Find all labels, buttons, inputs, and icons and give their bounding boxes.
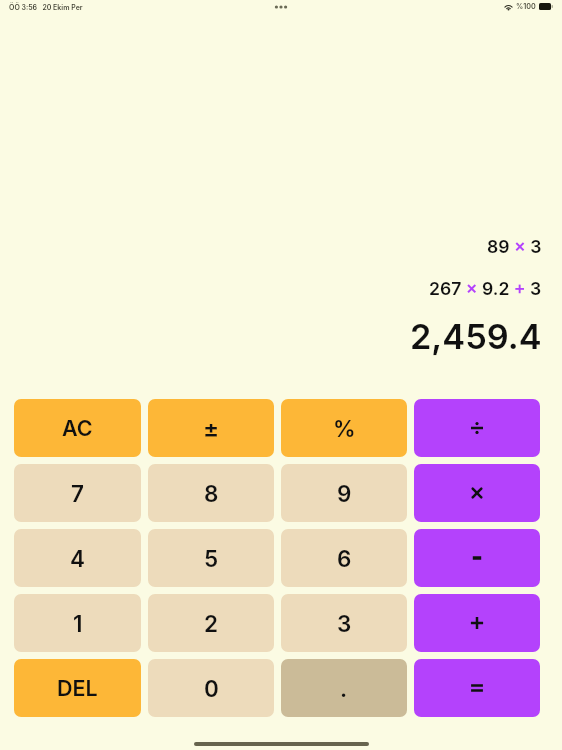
staticText: ± bbox=[203, 414, 220, 443]
staticText: 2 bbox=[204, 610, 219, 637]
button[interactable]: 7 bbox=[14, 464, 141, 522]
staticText: . bbox=[340, 675, 348, 702]
staticText: 7 bbox=[71, 480, 84, 507]
staticText: 3 bbox=[337, 610, 352, 637]
button[interactable]: Divide bbox=[414, 399, 540, 457]
staticText: AC bbox=[62, 415, 93, 441]
button[interactable]: 1 bbox=[14, 594, 141, 652]
staticText: %100 bbox=[516, 2, 536, 11]
staticText: 2,459.4 bbox=[410, 316, 542, 358]
staticText: 0 bbox=[204, 675, 219, 702]
staticText: ÖÖ 3:56 20 Ekim Per bbox=[9, 3, 83, 11]
staticText: 6 bbox=[337, 545, 352, 572]
staticText: 5 bbox=[204, 545, 219, 572]
button[interactable]: 0 bbox=[148, 659, 274, 717]
button[interactable]: Equals bbox=[414, 659, 540, 717]
button[interactable]: AC bbox=[14, 399, 141, 457]
button[interactable]: Subtract bbox=[414, 529, 540, 587]
button[interactable]: Multiply bbox=[414, 464, 540, 522]
button[interactable]: DEL bbox=[14, 659, 141, 717]
button[interactable]: 6 bbox=[281, 529, 407, 587]
button[interactable]: % bbox=[281, 399, 407, 457]
button[interactable]: Add bbox=[414, 594, 540, 652]
staticText: 8 bbox=[204, 480, 219, 507]
staticText: 267 × 9.2 + 3 bbox=[429, 278, 542, 299]
staticText: DEL bbox=[57, 675, 98, 701]
button[interactable]: 3 bbox=[281, 594, 407, 652]
staticText: % bbox=[333, 415, 356, 442]
button[interactable]: 8 bbox=[148, 464, 274, 522]
staticText: 4 bbox=[70, 545, 85, 572]
button[interactable]: 4 bbox=[14, 529, 141, 587]
button[interactable]: 5 bbox=[148, 529, 274, 587]
staticText: 89 × 3 bbox=[487, 236, 542, 257]
staticText: 1 bbox=[73, 610, 83, 637]
staticText: 9 bbox=[337, 480, 352, 507]
button[interactable]: 2 bbox=[148, 594, 274, 652]
button[interactable]: . bbox=[281, 659, 407, 717]
button[interactable]: 9 bbox=[281, 464, 407, 522]
button[interactable]: ± bbox=[148, 399, 274, 457]
